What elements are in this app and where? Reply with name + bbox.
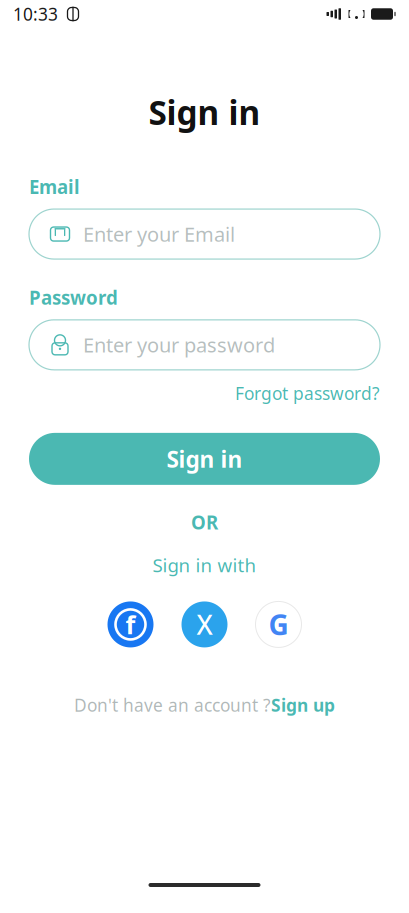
staticText: Sign up: [271, 693, 335, 716]
staticText: Email: [29, 174, 80, 199]
staticText: Sign in with: [152, 553, 256, 577]
button[interactable]: Sign in with Google: [255, 601, 301, 647]
staticText: OR: [191, 510, 218, 535]
button[interactable]: Sign in: [29, 433, 380, 485]
staticText: Enter your Email: [83, 221, 235, 247]
staticText: 10:33: [13, 2, 58, 25]
button[interactable]: Sign in with Facebook: [107, 601, 153, 647]
button[interactable]: Enter your password: [29, 320, 380, 370]
staticText: X: [196, 607, 212, 642]
staticText: Password: [29, 285, 118, 310]
staticText: Don't have an account ?: [74, 693, 271, 716]
staticText: G: [268, 606, 288, 643]
staticText: Enter your password: [83, 332, 275, 358]
button[interactable]: Sign in with X: [181, 601, 227, 647]
staticText: Sign in: [166, 444, 242, 474]
button[interactable]: Enter your Email: [29, 209, 380, 259]
button[interactable]: Forgot password?: [235, 382, 380, 405]
staticText: f: [125, 608, 135, 641]
staticText: Forgot password?: [235, 382, 380, 405]
staticText: Sign in: [148, 90, 260, 134]
button[interactable]: Sign up: [271, 693, 335, 716]
